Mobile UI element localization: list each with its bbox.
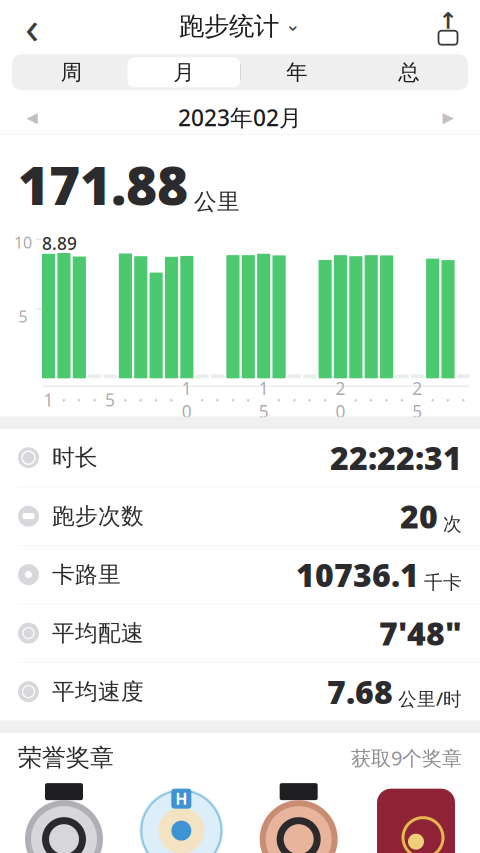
staticText: 15 [259,377,269,423]
button[interactable]: Previous month [10,100,54,134]
staticText: ▶ [442,109,453,126]
staticText: 次 [443,512,462,535]
staticText: · [246,388,251,411]
staticText: 1 [44,388,54,411]
staticText: · [369,388,374,411]
staticText: 年 [286,59,307,85]
staticText: H [175,788,187,809]
staticText: · [323,388,328,411]
staticText: 7.68 [327,670,393,713]
staticText: · [61,388,66,411]
staticText: · [292,388,297,411]
staticText: 公里 [194,188,240,216]
button[interactable]: Achievement medal [370,785,462,853]
staticText: · [446,388,451,411]
staticText: · [169,388,174,411]
staticText: 5 [105,388,115,411]
staticText: · [353,388,358,411]
staticText: ↑ [438,8,457,34]
button[interactable]: Marathon medal [135,785,227,853]
button[interactable]: 跑步次数 [0,487,480,546]
button[interactable]: 月 [127,57,240,87]
button[interactable]: 平均配速 [0,604,480,663]
button[interactable]: 总 [352,57,465,87]
staticText: · [200,388,205,411]
staticText: 平均配速 [52,619,144,647]
staticText: 平均速度 [52,678,144,705]
button[interactable]: 跑步统计 [171,2,309,50]
button[interactable]: 周 [15,57,127,87]
staticText: 总 [398,59,419,85]
button[interactable]: 卡路里 [0,546,480,604]
staticText: 公里/时 [398,686,462,711]
staticText: ◀ [26,109,37,126]
staticText: · [138,388,143,411]
button[interactable]: Rose gold medal [253,783,345,853]
staticText: 2023年02月 [178,102,302,132]
staticText: 10 [182,377,192,423]
button[interactable]: 时长 [0,429,480,487]
staticText: · [307,388,312,411]
button[interactable]: 年 [240,57,352,87]
button[interactable]: 平均速度 [0,663,480,721]
staticText: · [276,388,281,411]
staticText: 荣誉奖章 [18,743,114,772]
staticText: 千卡 [424,571,462,594]
staticText: 10 [14,232,32,253]
staticText: 时长 [52,444,98,471]
staticText: ⌄ [285,14,301,35]
staticText: 7'48" [379,612,462,654]
staticText: 跑步统计 [179,11,279,42]
staticText: · [230,388,235,411]
staticText: · [154,388,159,411]
button[interactable]: 荣誉奖章 [0,733,480,783]
button[interactable]: Share [422,2,474,50]
staticText: · [461,388,466,411]
staticText: 20 [400,495,438,537]
staticText: 跑步次数 [52,502,144,530]
staticText: 20 [335,377,345,423]
staticText: 22:22:31 [330,436,462,479]
staticText: 5 [18,306,27,327]
staticText: 8.89 [42,232,77,255]
staticText: 10736.1 [296,553,419,596]
staticText: · [77,388,82,411]
staticText: · [399,388,404,411]
staticText: 卡路里 [52,561,121,588]
staticText: 获取9个奖章 [351,744,462,771]
staticText: · [92,388,97,411]
staticText: 171.88 [18,149,188,220]
button[interactable]: Back [6,2,58,50]
button[interactable]: Next month [426,100,470,134]
button[interactable]: Silver medal [18,783,110,853]
staticText: · [215,388,220,411]
staticText: ‹ [25,0,39,56]
staticText: · [123,388,128,411]
staticText: · [384,388,389,411]
staticText: 25 [412,377,422,423]
staticText: 月 [173,59,194,85]
staticText: 周 [61,59,82,85]
staticText: · [430,388,435,411]
